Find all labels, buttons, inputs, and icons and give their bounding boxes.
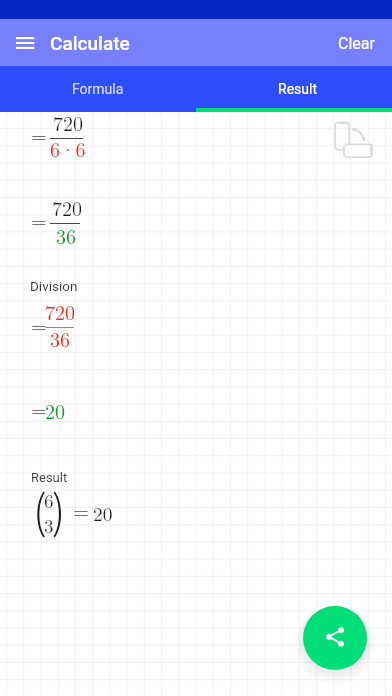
- staticText: 36: [56, 221, 76, 249]
- button[interactable]: Clear: [322, 24, 391, 63]
- staticText: Division: [30, 278, 78, 294]
- staticText: =: [31, 310, 47, 338]
- button[interactable]: Open navigation menu: [16, 34, 38, 56]
- staticText: 20: [93, 499, 113, 527]
- staticText: =: [31, 394, 47, 422]
- staticText: 20: [45, 396, 65, 424]
- staticText: Result: [278, 81, 317, 97]
- staticText: =: [73, 496, 89, 525]
- staticText: =: [31, 205, 47, 233]
- staticText: 720: [52, 193, 82, 221]
- button[interactable]: Result: [196, 66, 392, 112]
- staticText: Formula: [72, 81, 124, 97]
- staticText: 720: [53, 108, 83, 136]
- staticText: Result: [31, 470, 68, 485]
- staticText: Calculate: [50, 32, 130, 54]
- staticText: 36: [50, 324, 70, 352]
- staticText: Clear: [338, 34, 375, 53]
- staticText: =: [31, 120, 47, 148]
- button[interactable]: Formula: [0, 66, 196, 112]
- staticText: 3: [44, 512, 54, 539]
- staticText: 720: [45, 297, 75, 325]
- staticText: 6: [44, 487, 54, 514]
- staticText: 6·6: [50, 134, 86, 162]
- button[interactable]: Share: [303, 606, 367, 670]
- button[interactable]: Rotate screen: [333, 119, 377, 163]
